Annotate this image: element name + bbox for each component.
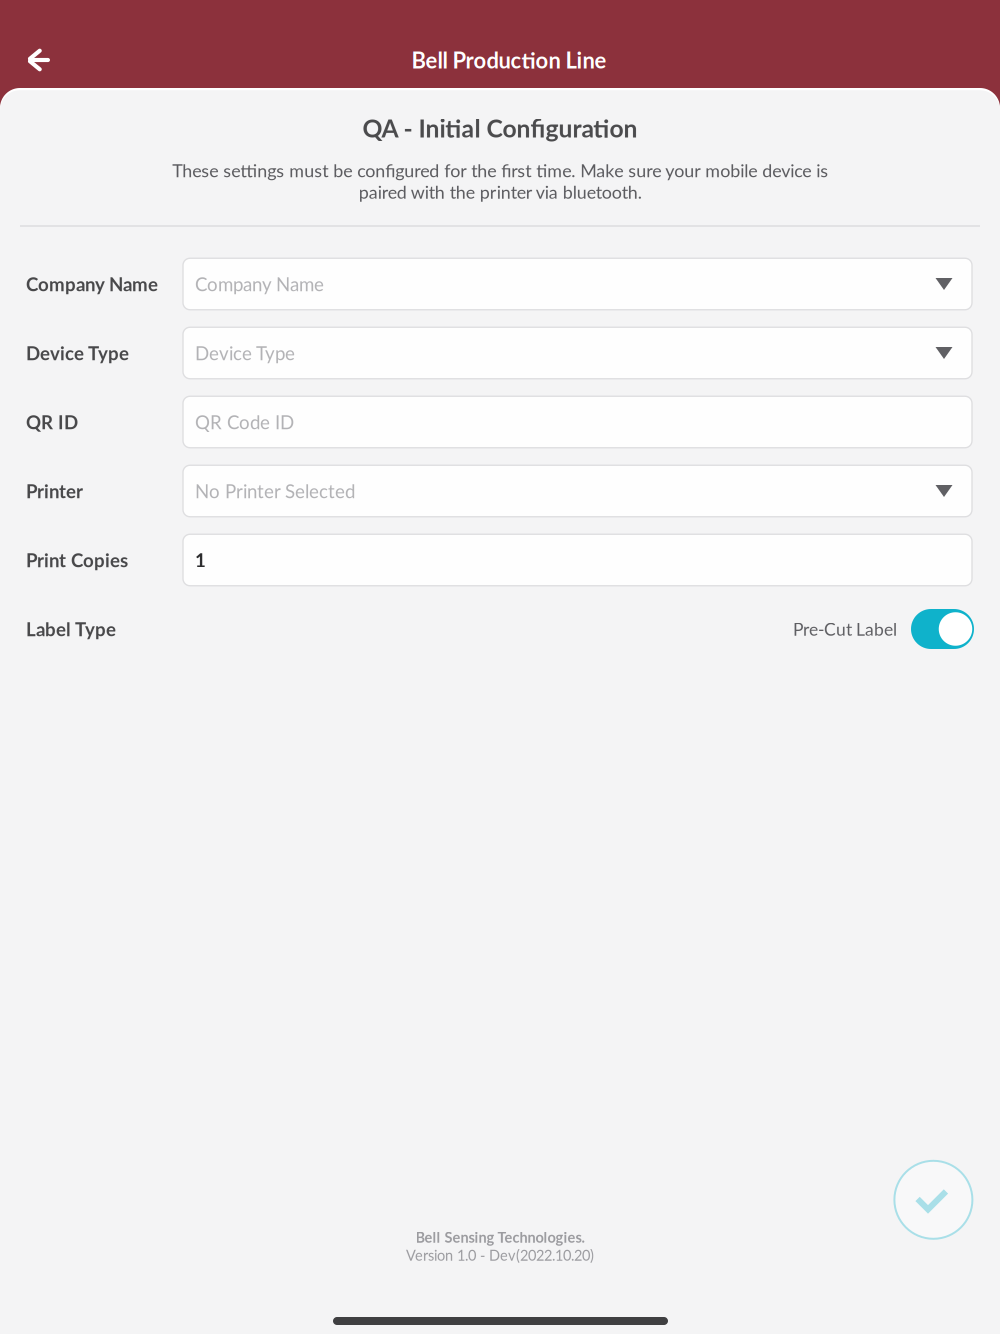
button[interactable]: Confirm — [890, 1157, 976, 1243]
button[interactable]: Company Name — [183, 258, 972, 310]
staticText: Bell Production Line — [411, 47, 606, 73]
button[interactable]: 1 — [183, 534, 972, 586]
staticText: These settings must be configured for th… — [172, 160, 828, 202]
staticText: 1 — [195, 549, 206, 571]
button[interactable]: No Printer Selected — [183, 465, 972, 517]
staticText: Device Type — [26, 342, 129, 364]
staticText: QA - Initial Configuration — [362, 113, 637, 143]
staticText: Pre-Cut Label — [793, 618, 897, 639]
staticText: Print Copies — [26, 549, 128, 571]
staticText: Version 1.0 - Dev(2022.10.20) — [406, 1246, 594, 1264]
staticText: Bell Sensing Technologies. — [415, 1228, 584, 1246]
staticText: QR Code ID — [195, 411, 294, 433]
button[interactable]: Pre-Cut Label — [911, 609, 974, 649]
staticText: Company Name — [26, 273, 158, 295]
staticText: QR ID — [26, 411, 78, 433]
button[interactable]: Device Type — [183, 327, 972, 379]
button[interactable]: Back — [3, 24, 75, 96]
staticText: Company Name — [195, 273, 324, 295]
staticText: Label Type — [26, 618, 116, 640]
button[interactable]: QR Code ID — [183, 396, 972, 448]
staticText: Printer — [26, 480, 83, 502]
staticText: Device Type — [195, 342, 295, 364]
staticText: No Printer Selected — [195, 480, 355, 502]
